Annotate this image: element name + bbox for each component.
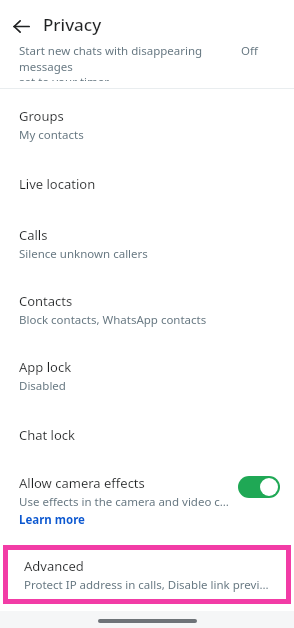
- button[interactable]: Groups: [0, 89, 294, 157]
- staticText: App lock: [19, 358, 72, 376]
- staticText: Advanced: [24, 557, 84, 575]
- staticText: Live location: [19, 175, 96, 193]
- staticText: Silence unknown callers: [19, 246, 148, 262]
- button[interactable]: Back: [8, 13, 34, 39]
- button[interactable]: Allow camera effects toggle: [238, 476, 280, 498]
- staticText: Block contacts, WhatsApp contacts: [19, 312, 207, 328]
- staticText: Start new chats with disappearing messag…: [19, 43, 241, 81]
- button[interactable]: Learn more: [19, 512, 85, 528]
- button[interactable]: Privacy checkup: [0, 613, 294, 628]
- button[interactable]: Contacts: [0, 276, 294, 342]
- button[interactable]: Start new chats with disappearing messag…: [0, 50, 294, 88]
- staticText: Protect IP address in calls, Disable lin…: [24, 577, 272, 593]
- button[interactable]: Advanced: [3, 545, 291, 604]
- staticText: Disabled: [19, 378, 66, 394]
- staticText: My contacts: [19, 127, 84, 143]
- staticText: Use effects in the camera and video call…: [19, 494, 232, 510]
- button[interactable]: Chat lock: [0, 408, 294, 461]
- staticText: Contacts: [19, 292, 73, 310]
- button[interactable]: App lock: [0, 342, 294, 408]
- staticText: Off: [241, 43, 258, 59]
- staticText: Chat lock: [19, 426, 76, 444]
- button[interactable]: Allow camera effects: [0, 461, 294, 538]
- staticText: Allow camera effects: [19, 474, 145, 492]
- staticText: Calls: [19, 226, 48, 244]
- staticText: Privacy: [43, 13, 102, 36]
- staticText: Groups: [19, 107, 64, 125]
- button[interactable]: Calls: [0, 211, 294, 276]
- button[interactable]: Live location: [0, 157, 294, 211]
